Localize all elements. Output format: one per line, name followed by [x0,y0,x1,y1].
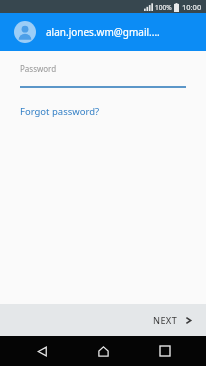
button[interactable] [0,78,206,88]
button[interactable]: alan.jones.wm@gmail.... [0,13,206,51]
button[interactable]: Recent apps [145,336,185,366]
staticText: alan.jones.wm@gmail.... [46,25,160,39]
button[interactable]: Home [83,336,123,366]
staticText: Forgot password? [20,105,100,118]
staticText: 10:00 [182,2,202,12]
staticText: NEXT [153,314,178,326]
staticText: Password [20,63,57,74]
button[interactable]: Forgot password? [20,103,100,120]
button[interactable]: NEXT [139,308,206,332]
staticText: 100% [155,3,172,12]
button[interactable]: Back [22,336,62,366]
